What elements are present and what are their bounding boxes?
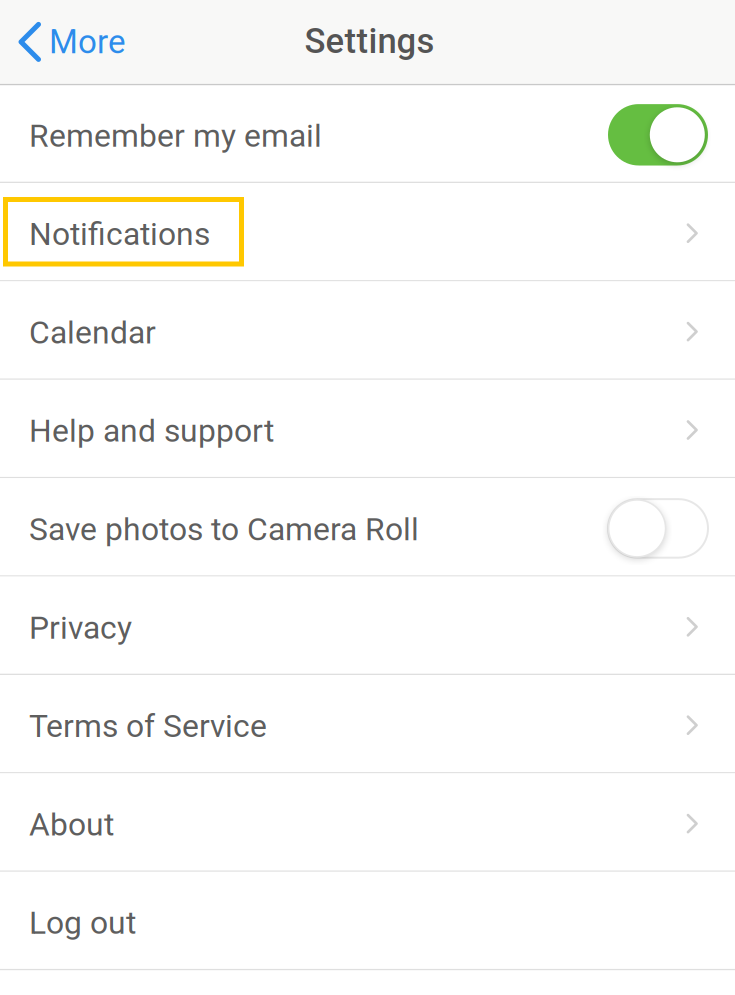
staticText: Privacy [29, 609, 132, 646]
button[interactable]: Log out [0, 872, 735, 970]
button[interactable]: Terms of Service [0, 675, 735, 773]
button[interactable]: Help and support [0, 380, 735, 478]
button[interactable]: About [0, 773, 735, 872]
staticText: Save photos to Camera Roll [29, 511, 419, 548]
button[interactable]: Notifications [0, 183, 735, 281]
staticText: More [49, 22, 126, 61]
staticText: Notifications [29, 216, 210, 253]
button[interactable]: More [0, 0, 140, 85]
button[interactable]: Calendar [0, 281, 735, 380]
button[interactable]: Privacy [0, 577, 735, 675]
staticText: Remember my email [29, 117, 322, 154]
staticText: Help and support [29, 412, 274, 450]
staticText: Terms of Service [29, 708, 267, 745]
staticText: Calendar [29, 314, 156, 351]
staticText: About [29, 806, 114, 843]
staticText: Settings [304, 21, 434, 61]
button[interactable]: Remember my email [0, 85, 735, 183]
staticText: Log out [29, 904, 136, 942]
button[interactable]: Save photos to Camera Roll [0, 478, 735, 577]
